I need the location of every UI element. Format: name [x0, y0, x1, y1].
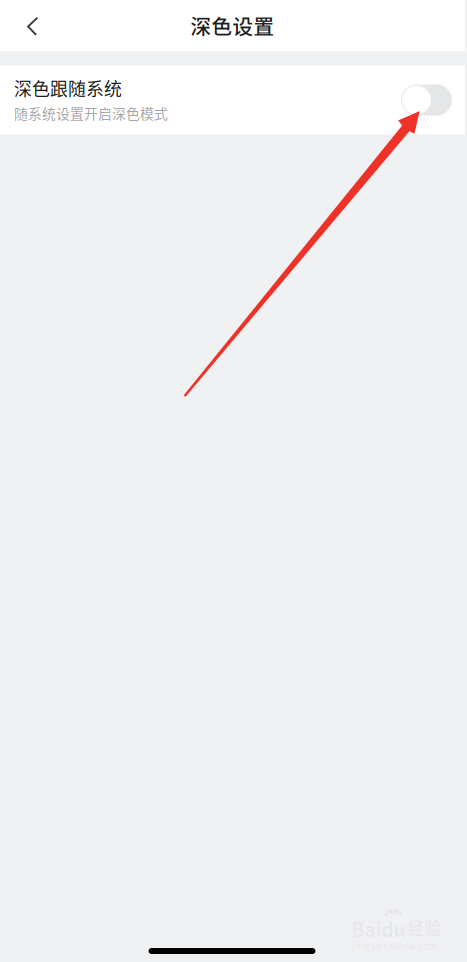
- staticText: 随系统设置开启深色模式: [14, 103, 168, 123]
- staticText: Baidu: [351, 914, 405, 942]
- staticText: 深色设置: [190, 11, 274, 40]
- button[interactable]: 返回: [9, 0, 55, 51]
- staticText: 深色跟随系统: [14, 75, 122, 101]
- button[interactable]: 深色跟随系统: [0, 66, 467, 134]
- staticText: 经验: [407, 915, 441, 940]
